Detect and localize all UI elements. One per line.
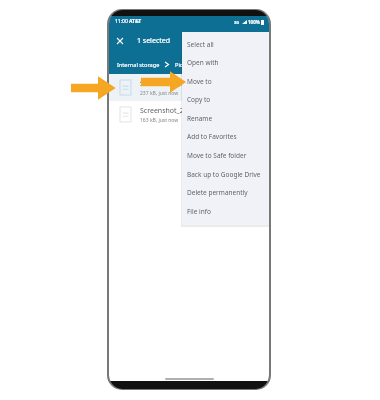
staticText: AT&T <box>129 18 142 25</box>
staticText: 237 kB, just now <box>140 90 179 97</box>
button[interactable]: Close selection <box>113 34 127 48</box>
staticText: Screenshot_2 <box>140 106 184 116</box>
staticText: 11:00 <box>115 18 128 25</box>
button[interactable]: Back up to Google Drive <box>182 165 269 184</box>
staticText: Move to Safe folder <box>187 151 247 160</box>
staticText: 3G <box>234 20 240 25</box>
staticText: Open with <box>187 58 219 67</box>
button[interactable]: Screenshot_2 <box>109 101 269 128</box>
staticText: Move to <box>187 77 212 86</box>
button[interactable]: File info <box>182 202 269 221</box>
staticText: Copy to <box>187 95 211 104</box>
button[interactable]: Select all <box>182 35 269 54</box>
button[interactable]: Rename <box>182 109 269 128</box>
staticText: 1 selected <box>137 36 171 46</box>
button[interactable]: Move to Safe folder <box>182 146 269 165</box>
staticText: Screenshot_1 <box>140 79 184 89</box>
staticText: Add to Favorites <box>187 132 237 141</box>
button[interactable]: Open with <box>182 53 269 72</box>
staticText: Back up to Google Drive <box>187 170 261 179</box>
button[interactable]: Delete permanently <box>182 183 269 202</box>
button[interactable]: Screenshot_1 <box>109 74 269 101</box>
staticText: 163 kB, just now <box>140 117 179 124</box>
staticText: Delete permanently <box>187 188 248 197</box>
staticText: Select all <box>187 40 214 49</box>
button[interactable]: Add to Favorites <box>182 127 269 146</box>
staticText: Pictures <box>175 61 197 69</box>
button[interactable]: Internal storage <box>117 61 160 69</box>
staticText: 100% <box>248 19 260 25</box>
button[interactable]: Copy to <box>182 90 269 109</box>
staticText: File info <box>187 207 211 216</box>
staticText: Rename <box>187 114 213 123</box>
button[interactable]: Move to <box>182 72 269 91</box>
